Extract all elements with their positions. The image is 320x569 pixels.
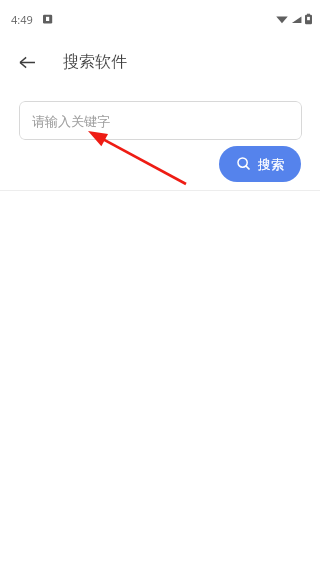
button[interactable]: 搜索 [219, 146, 301, 182]
button[interactable]: 请输入关键字 [19, 101, 302, 140]
button[interactable]: Back [10, 45, 44, 79]
staticText: 请输入关键字 [32, 113, 110, 129]
staticText: 搜索 [258, 156, 284, 172]
staticText: 4:49 [11, 12, 33, 27]
staticText: 搜索软件 [63, 52, 127, 72]
